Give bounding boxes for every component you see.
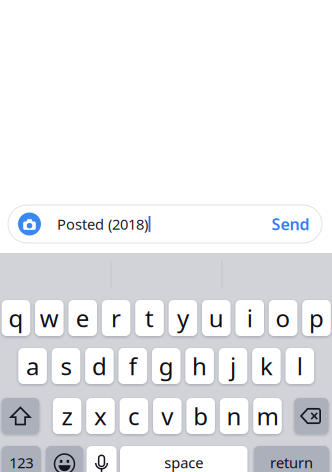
button[interactable]: j <box>219 348 247 384</box>
staticText: u <box>209 302 224 334</box>
staticText: f <box>129 350 137 382</box>
staticText: v <box>161 400 173 432</box>
staticText: i <box>247 302 253 334</box>
staticText: p <box>309 302 324 334</box>
staticText: a <box>26 350 39 382</box>
staticText: y <box>177 302 189 334</box>
staticText: space <box>164 453 203 472</box>
staticText: b <box>193 400 208 432</box>
button[interactable]: u <box>202 300 231 336</box>
button[interactable]: h <box>185 348 214 384</box>
staticText: e <box>76 302 90 334</box>
staticText: o <box>276 302 291 334</box>
button[interactable]: g <box>152 348 180 384</box>
button[interactable]: n <box>220 398 248 434</box>
button[interactable]: p <box>302 300 331 336</box>
button[interactable]: z <box>53 398 81 434</box>
button[interactable]: a <box>18 348 47 384</box>
button[interactable]: y <box>169 300 197 336</box>
button[interactable]: c <box>120 398 148 434</box>
staticText: Posted (2018) <box>57 214 148 234</box>
staticText: m <box>256 400 278 432</box>
staticText: c <box>128 400 140 432</box>
staticText: k <box>260 350 273 382</box>
button[interactable]: Delete <box>294 398 328 434</box>
button[interactable]: f <box>118 348 147 384</box>
button[interactable]: 123 <box>2 446 41 472</box>
button[interactable]: Dictate <box>86 446 117 472</box>
button[interactable]: r <box>102 300 130 336</box>
button[interactable]: Emoji <box>46 446 83 472</box>
button[interactable]: d <box>85 348 114 384</box>
button[interactable]: b <box>186 398 215 434</box>
button[interactable]: return <box>254 446 329 472</box>
staticText: return <box>270 453 313 472</box>
button[interactable]: w <box>35 300 64 336</box>
button[interactable]: Camera <box>14 209 44 239</box>
staticText: j <box>230 350 236 382</box>
button[interactable]: q <box>2 300 30 336</box>
staticText: g <box>159 350 174 382</box>
staticText: q <box>8 302 23 334</box>
button[interactable]: v <box>153 398 182 434</box>
button[interactable]: o <box>269 300 297 336</box>
button[interactable]: k <box>252 348 281 384</box>
button[interactable]: m <box>253 398 282 434</box>
staticText: l <box>297 350 303 382</box>
staticText: z <box>62 400 73 432</box>
button[interactable]: space <box>120 446 247 472</box>
staticText: Send <box>271 213 309 235</box>
staticText: n <box>227 400 242 432</box>
staticText: r <box>111 302 121 334</box>
staticText: 123 <box>9 453 33 472</box>
staticText: s <box>60 350 71 382</box>
button[interactable]: x <box>86 398 115 434</box>
button[interactable]: Send <box>261 204 319 244</box>
button[interactable]: i <box>235 300 264 336</box>
staticText: x <box>94 400 107 432</box>
staticText: t <box>145 302 154 334</box>
button[interactable]: s <box>52 348 80 384</box>
button[interactable]: Shift <box>2 398 39 434</box>
staticText: w <box>40 302 59 334</box>
button[interactable]: l <box>285 348 314 384</box>
button[interactable]: e <box>68 300 97 336</box>
staticText: h <box>192 350 207 382</box>
button[interactable]: t <box>135 300 164 336</box>
staticText: d <box>92 350 107 382</box>
